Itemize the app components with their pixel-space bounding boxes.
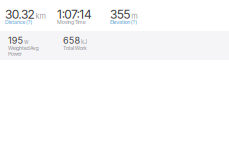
staticText: 1:07:14 (57, 7, 92, 21)
staticText: Elevation (?) (110, 19, 137, 25)
staticText: 30.32 (5, 7, 35, 21)
staticText: Distance (?) (5, 19, 33, 25)
staticText: Moving Time (57, 19, 86, 25)
staticText: w (24, 39, 29, 45)
staticText: 195 (8, 35, 24, 46)
staticText: Weighted Avg (8, 45, 39, 51)
staticText: Total Work (63, 45, 87, 51)
staticText: km (36, 12, 46, 20)
staticText: Power (8, 51, 22, 57)
staticText: m (131, 12, 137, 20)
staticText: 658 (63, 35, 81, 46)
staticText: kJ (81, 39, 87, 45)
staticText: 355 (110, 7, 130, 21)
